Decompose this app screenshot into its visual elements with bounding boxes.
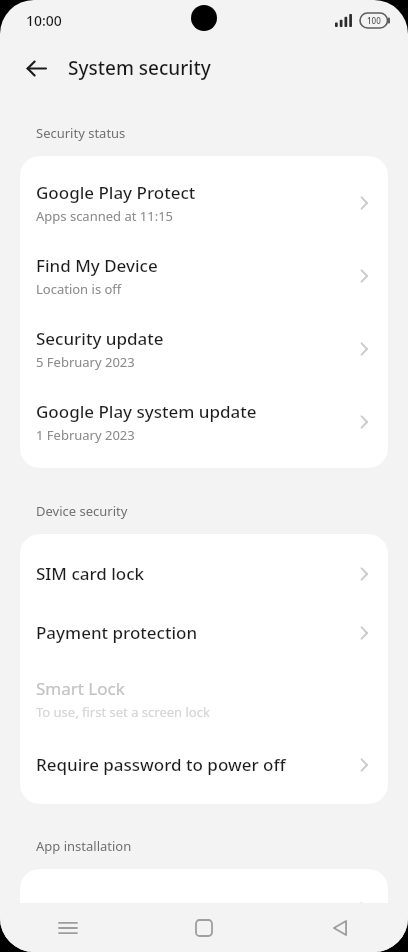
button[interactable]: Smart Lock	[20, 662, 388, 735]
staticText: Device security	[36, 502, 128, 520]
staticText: App installation	[36, 837, 132, 855]
button[interactable]: Security update	[20, 312, 388, 385]
staticText: Google Play Protect	[36, 181, 196, 204]
staticText: Installation sources	[36, 897, 356, 920]
staticText: 100	[367, 15, 381, 26]
button[interactable]: Google Play system update	[20, 385, 388, 458]
staticText: 1 February 2023	[36, 426, 135, 444]
button[interactable]: Google Play Protect	[20, 166, 388, 239]
button[interactable]: Home	[136, 903, 272, 952]
staticText: Require password to power off	[36, 753, 356, 776]
staticText: 10:00	[26, 11, 62, 30]
button[interactable]: Installation sources	[20, 879, 388, 938]
staticText: 5 February 2023	[36, 353, 135, 371]
button[interactable]: Payment protection	[20, 603, 388, 662]
staticText: Apps scanned at 11:15	[36, 207, 174, 225]
button[interactable]: Find My Device	[20, 239, 388, 312]
staticText: System security	[68, 55, 211, 81]
staticText: Find My Device	[36, 254, 158, 277]
button[interactable]: Require password to power off	[20, 735, 388, 794]
button[interactable]: Recent apps	[0, 903, 136, 952]
staticText: Security update	[36, 327, 164, 350]
button[interactable]: Back	[272, 903, 408, 952]
button[interactable]: Back	[14, 46, 58, 90]
button[interactable]: SIM card lock	[20, 544, 388, 603]
staticText: Security status	[36, 124, 126, 142]
staticText: Location is off	[36, 280, 122, 298]
staticText: To use, first set a screen lock	[36, 703, 210, 721]
staticText: Payment protection	[36, 621, 356, 644]
staticText: Google Play system update	[36, 400, 257, 423]
staticText: Smart Lock	[36, 677, 125, 700]
staticText: SIM card lock	[36, 562, 356, 585]
